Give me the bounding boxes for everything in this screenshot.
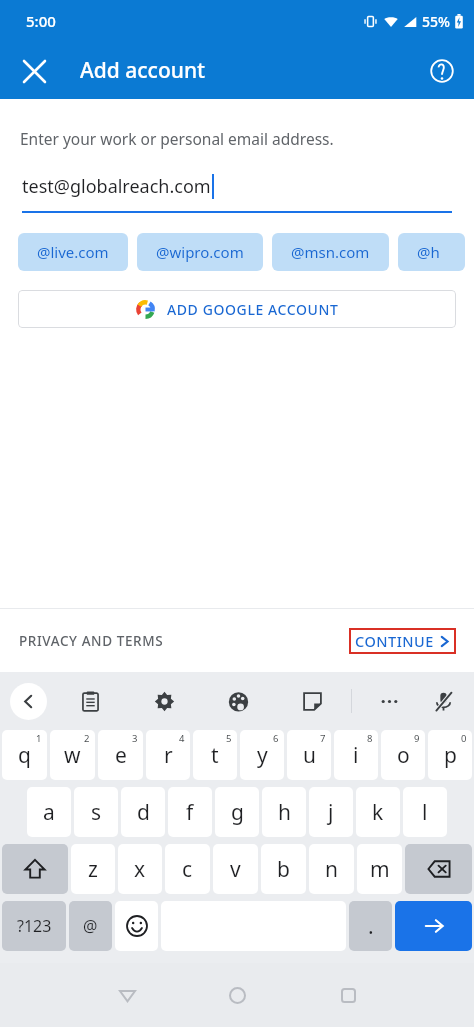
staticText: @hotmail.com	[417, 242, 446, 262]
staticText: @live.com	[37, 242, 109, 262]
button[interactable]: w	[50, 730, 95, 780]
staticText: p	[444, 741, 457, 770]
button[interactable]: v	[213, 844, 258, 894]
button[interactable]: y	[240, 730, 284, 780]
staticText: v	[230, 855, 241, 884]
button[interactable]: t	[193, 730, 237, 780]
button[interactable]: Enter	[395, 901, 472, 951]
button[interactable]: q	[2, 730, 47, 780]
button[interactable]: h	[262, 787, 306, 837]
staticText: @wipro.com	[156, 242, 244, 262]
button[interactable]: b	[261, 844, 306, 894]
staticText: 7	[320, 732, 326, 745]
staticText: c	[182, 855, 193, 884]
button[interactable]: o	[381, 730, 425, 780]
button[interactable]: Back	[103, 971, 151, 1019]
button[interactable]: r	[146, 730, 190, 780]
button[interactable]: g	[215, 787, 259, 837]
button[interactable]: a	[27, 787, 71, 837]
staticText: 4	[179, 732, 185, 745]
button[interactable]: d	[121, 787, 165, 837]
button[interactable]: Voice input	[426, 684, 460, 718]
button[interactable]: i	[334, 730, 378, 780]
button[interactable]: More options	[372, 684, 406, 718]
button[interactable]: m	[357, 844, 402, 894]
button[interactable]: @wipro.com	[137, 233, 263, 271]
button[interactable]: ?123	[2, 901, 66, 951]
staticText: b	[277, 855, 290, 884]
staticText: 55%	[422, 12, 450, 31]
staticText: t	[211, 741, 219, 770]
button[interactable]: @msn.com	[272, 233, 389, 271]
staticText: m	[370, 855, 390, 884]
staticText: h	[278, 798, 291, 827]
button[interactable]: Backspace	[405, 844, 472, 894]
button[interactable]: Back	[10, 683, 47, 720]
staticText: .	[368, 912, 374, 941]
button[interactable]: k	[356, 787, 400, 837]
staticText: i	[353, 741, 359, 770]
staticText: j	[328, 798, 334, 827]
staticText: 2	[84, 732, 90, 745]
staticText: z	[88, 855, 98, 884]
staticText: k	[372, 798, 384, 827]
staticText: r	[164, 741, 173, 770]
button[interactable]: j	[309, 787, 353, 837]
staticText: l	[422, 798, 428, 827]
button[interactable]: x	[118, 844, 162, 894]
button[interactable]: ADD GOOGLE ACCOUNT	[18, 290, 456, 328]
staticText: q	[18, 741, 31, 770]
button[interactable]: s	[74, 787, 118, 837]
button[interactable]: PRIVACY AND TERMS	[19, 632, 164, 650]
staticText: 6	[273, 732, 279, 745]
staticText: n	[325, 855, 338, 884]
staticText: a	[43, 798, 55, 827]
button[interactable]: Clipboard	[73, 684, 107, 718]
button[interactable]: p	[428, 730, 472, 780]
staticText: f	[186, 798, 194, 827]
button[interactable]: e	[98, 730, 143, 780]
button[interactable]: c	[165, 844, 210, 894]
button[interactable]: .	[349, 901, 392, 951]
staticText: CONTINUE	[355, 631, 434, 651]
staticText: @msn.com	[291, 242, 370, 262]
staticText: x	[134, 855, 146, 884]
button[interactable]: Emoji	[115, 901, 158, 951]
button[interactable]: u	[287, 730, 331, 780]
button[interactable]: n	[309, 844, 354, 894]
button[interactable]: l	[403, 787, 447, 837]
button[interactable]: CONTINUE	[349, 628, 456, 654]
button[interactable]: Close	[12, 49, 56, 93]
button[interactable]: Themes	[221, 684, 255, 718]
button[interactable]: Shift	[2, 844, 68, 894]
button[interactable]: @live.com	[18, 233, 128, 271]
button[interactable]: @hotmail.com	[398, 233, 465, 271]
staticText: y	[257, 741, 268, 770]
button[interactable]: Recents	[324, 971, 372, 1019]
button[interactable]: z	[71, 844, 115, 894]
staticText: s	[91, 798, 102, 827]
staticText: ADD GOOGLE ACCOUNT	[167, 300, 339, 319]
staticText: o	[397, 741, 410, 770]
staticText: Enter your work or personal email addres…	[20, 128, 334, 149]
staticText: 0	[461, 732, 467, 745]
staticText: 5	[226, 732, 232, 745]
button[interactable]: Settings	[147, 684, 181, 718]
staticText: test@globalreach.com	[22, 174, 211, 199]
staticText: 5:00	[26, 11, 56, 31]
staticText: 3	[132, 732, 138, 745]
button[interactable]: Help	[420, 49, 464, 93]
staticText: Add account	[80, 56, 206, 85]
button[interactable]: Home	[213, 971, 261, 1019]
staticText: d	[137, 798, 150, 827]
button[interactable]: f	[168, 787, 212, 837]
button[interactable]: Stickers	[295, 684, 329, 718]
staticText: e	[115, 741, 127, 770]
staticText: 9	[414, 732, 420, 745]
staticText: ?123	[17, 915, 52, 937]
staticText: u	[303, 741, 316, 770]
button[interactable]: @	[69, 901, 112, 951]
staticText: 1	[36, 732, 42, 745]
staticText: g	[231, 798, 244, 827]
